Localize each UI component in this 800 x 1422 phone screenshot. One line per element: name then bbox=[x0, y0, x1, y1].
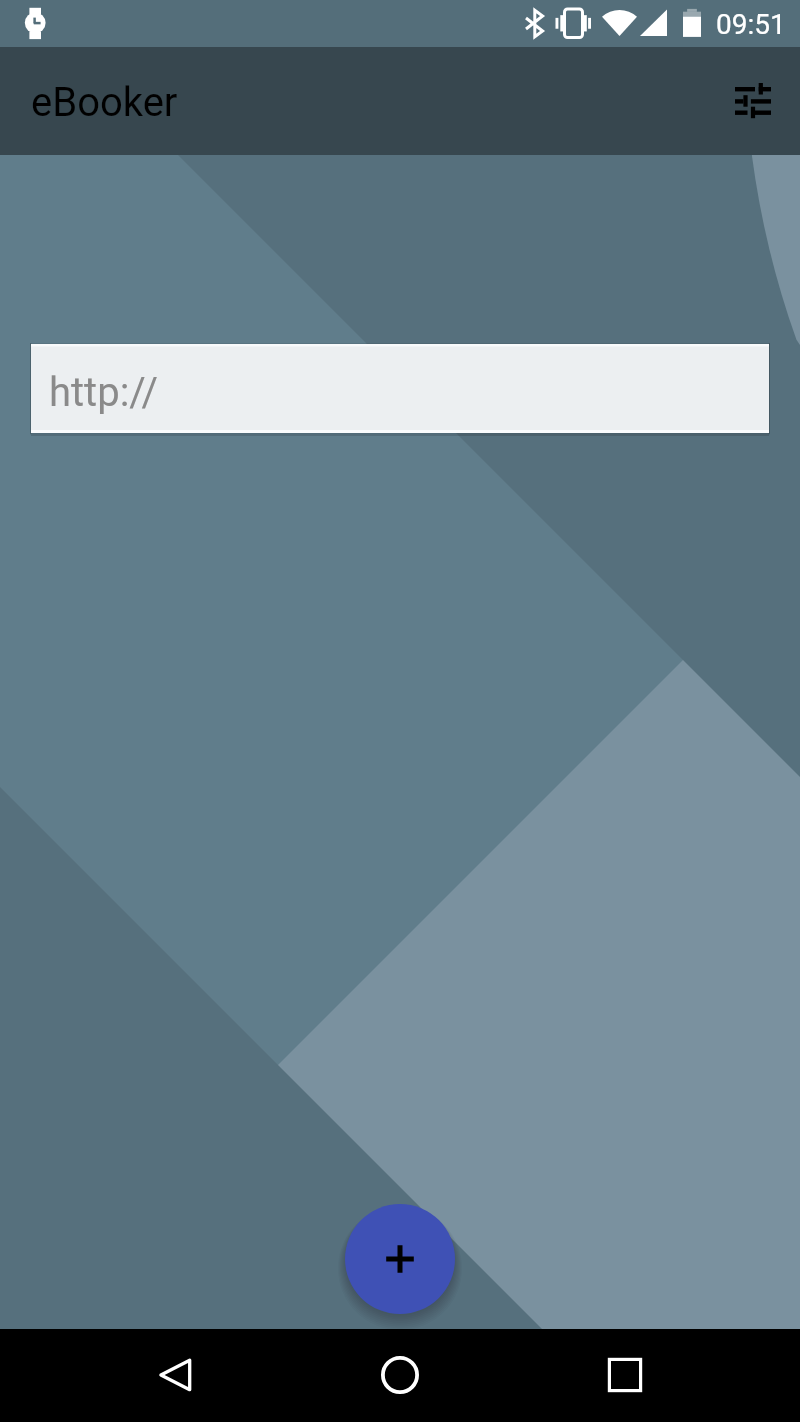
staticText: eBooker bbox=[31, 79, 178, 126]
staticText: http:// bbox=[49, 369, 158, 416]
button[interactable]: Settings bbox=[712, 60, 794, 142]
staticText: 09:51 bbox=[716, 8, 786, 41]
button[interactable]: http:// bbox=[31, 344, 769, 433]
button[interactable]: Back bbox=[145, 1345, 205, 1405]
button[interactable]: Add bbox=[345, 1204, 455, 1314]
button[interactable]: Home bbox=[370, 1345, 430, 1405]
button[interactable]: Recent apps bbox=[595, 1345, 655, 1405]
